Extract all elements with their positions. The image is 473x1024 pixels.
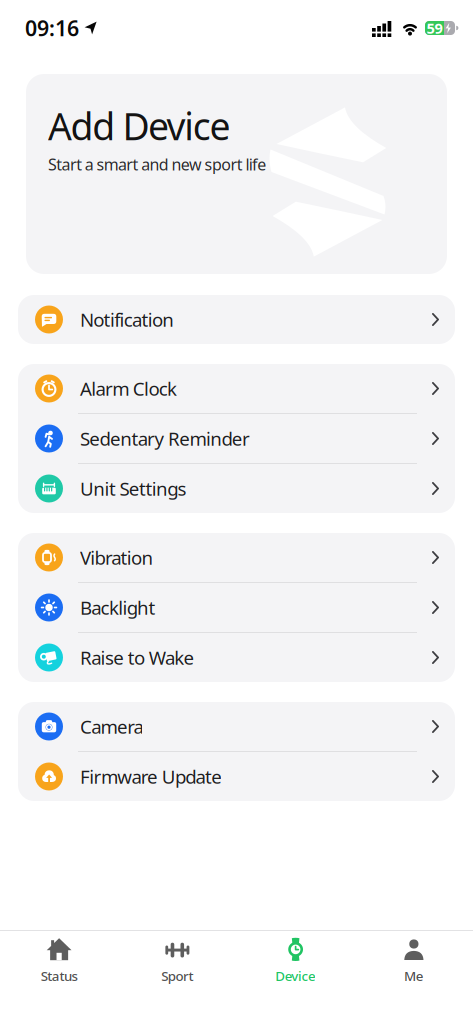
staticText: Sedentary Reminder xyxy=(80,426,250,451)
staticText: Vibration xyxy=(80,545,153,570)
staticText: Unit Settings xyxy=(80,476,187,501)
button[interactable]: Sedentary Reminder xyxy=(18,414,455,463)
button[interactable]: Camera xyxy=(18,702,455,751)
staticText: 09:16 xyxy=(25,14,79,42)
button[interactable]: Firmware Update xyxy=(18,752,455,801)
staticText: Raise to Wake xyxy=(80,645,195,670)
button[interactable]: Sport xyxy=(118,931,236,985)
staticText: Add Device xyxy=(48,101,230,151)
staticText: Alarm Clock xyxy=(80,376,177,401)
button[interactable]: Alarm Clock xyxy=(18,364,455,413)
button[interactable]: Status xyxy=(0,931,118,985)
button[interactable]: Device xyxy=(236,931,355,985)
button[interactable]: Unit Settings xyxy=(18,464,455,513)
staticText: Sport xyxy=(161,967,194,985)
button[interactable]: Add Device xyxy=(26,74,447,274)
staticText: Firmware Update xyxy=(80,764,222,789)
staticText: Backlight xyxy=(80,595,155,620)
staticText: 59 xyxy=(426,18,442,38)
staticText: Camera xyxy=(80,714,143,739)
button[interactable]: Backlight xyxy=(18,583,455,632)
button[interactable]: Notification xyxy=(18,295,455,344)
staticText: Me xyxy=(404,967,424,985)
staticText: Notification xyxy=(80,307,174,332)
button[interactable]: Raise to Wake xyxy=(18,633,455,682)
staticText: Start a smart and new sport life xyxy=(48,154,266,175)
staticText: Device xyxy=(275,967,316,985)
button[interactable]: Vibration xyxy=(18,533,455,582)
button[interactable]: Me xyxy=(355,931,473,985)
staticText: Status xyxy=(41,967,78,985)
